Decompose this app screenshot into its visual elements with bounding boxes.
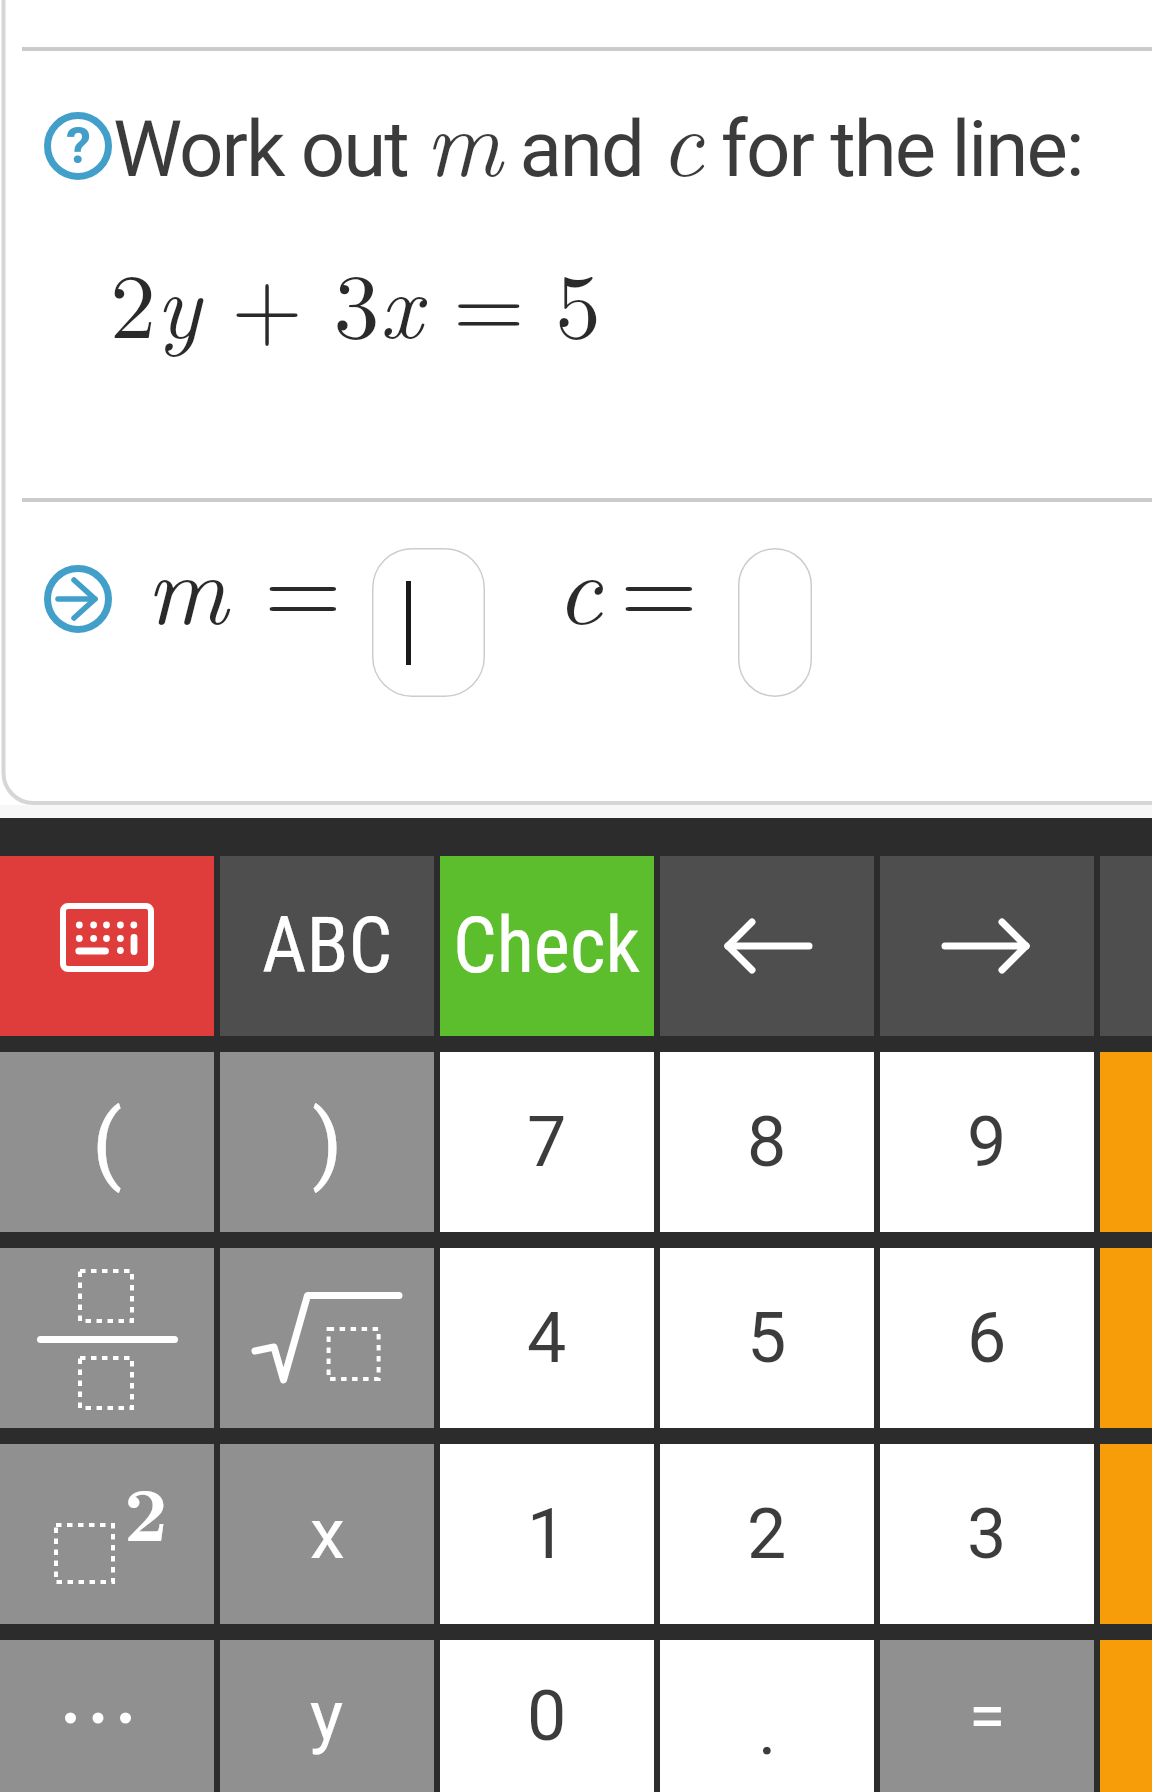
staticText: Check: [453, 901, 641, 991]
button[interactable]: [660, 856, 874, 1036]
button[interactable]: 2: [660, 1444, 874, 1624]
button[interactable]: [44, 565, 112, 633]
button[interactable]: 7: [440, 1052, 654, 1232]
staticText: 8: [747, 1101, 787, 1183]
staticText: x: [310, 1493, 345, 1575]
button[interactable]: ): [220, 1052, 434, 1232]
button[interactable]: 3: [880, 1444, 1094, 1624]
button[interactable]: Check: [440, 856, 654, 1036]
staticText: Work out m and c for the line:: [113, 70, 1083, 203]
staticText: 5: [747, 1297, 787, 1379]
staticText: 2: [747, 1493, 787, 1575]
button[interactable]: 0: [440, 1640, 654, 1792]
button[interactable]: [372, 548, 485, 697]
staticText: 4: [527, 1297, 567, 1379]
staticText: m: [146, 511, 228, 653]
staticText: ABC: [262, 901, 393, 991]
button[interactable]: 2: [0, 1444, 214, 1624]
staticText: =: [969, 1678, 1006, 1755]
staticText: .: [758, 1689, 777, 1771]
staticText: ): [312, 1091, 343, 1194]
staticText: c: [556, 511, 602, 653]
staticText: (: [92, 1091, 123, 1194]
button[interactable]: =: [880, 1640, 1094, 1792]
button[interactable]: [738, 548, 812, 697]
button[interactable]: 9: [880, 1052, 1094, 1232]
staticText: 0: [527, 1675, 567, 1757]
button[interactable]: [220, 1248, 434, 1428]
staticText: y: [310, 1675, 344, 1757]
staticText: 6: [967, 1297, 1007, 1379]
button[interactable]: 6: [880, 1248, 1094, 1428]
staticText: =: [620, 511, 698, 653]
button[interactable]: [880, 856, 1094, 1036]
button[interactable]: ABC: [220, 856, 434, 1036]
button[interactable]: y: [220, 1640, 434, 1792]
button[interactable]: .: [660, 1640, 874, 1792]
button[interactable]: (: [0, 1052, 214, 1232]
button[interactable]: ?: [44, 112, 112, 180]
staticText: ?: [66, 117, 91, 176]
staticText: 9: [967, 1101, 1007, 1183]
button[interactable]: 8: [660, 1052, 874, 1232]
button[interactable]: 1: [440, 1444, 654, 1624]
staticText: 1: [527, 1493, 567, 1575]
staticText: 7: [527, 1101, 567, 1183]
button[interactable]: [0, 1248, 214, 1428]
button[interactable]: x: [220, 1444, 434, 1624]
button[interactable]: 4: [440, 1248, 654, 1428]
staticText: 2y + 3x = 5: [110, 234, 602, 364]
staticText: 2: [124, 1455, 168, 1554]
button[interactable]: 5: [660, 1248, 874, 1428]
button[interactable]: [0, 856, 214, 1036]
button[interactable]: [0, 1640, 214, 1792]
staticText: 3: [967, 1493, 1007, 1575]
staticText: =: [264, 511, 342, 653]
